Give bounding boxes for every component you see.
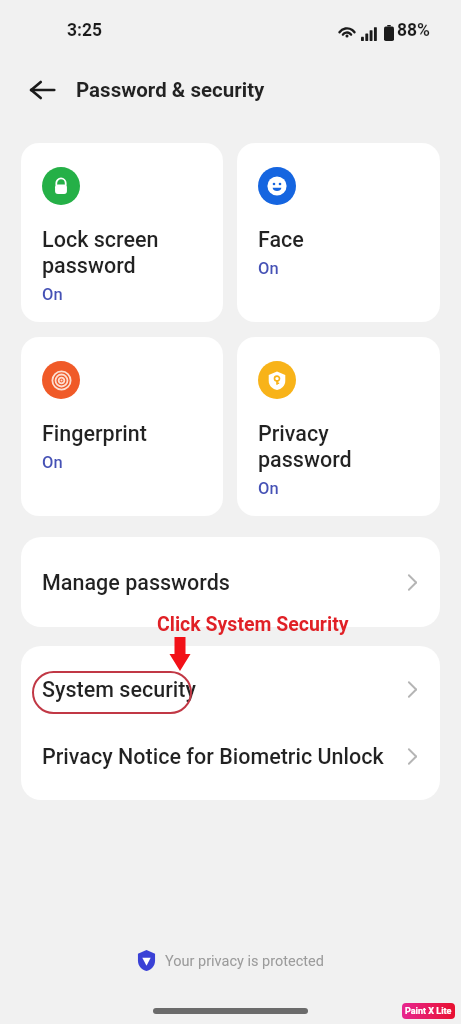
button[interactable]: Lock screen password <box>21 143 223 322</box>
button[interactable]: Face <box>237 143 440 322</box>
button[interactable]: System security <box>21 656 440 723</box>
staticText: Manage passwords <box>42 570 407 595</box>
staticText: Privacy Notice for Biometric Unlock <box>42 744 407 769</box>
button[interactable]: Fingerprint <box>21 337 223 516</box>
staticText: 3:25 <box>67 20 103 41</box>
staticText: 88% <box>397 20 431 41</box>
staticText: Privacy password <box>258 421 352 472</box>
button[interactable]: Privacy password <box>237 337 440 516</box>
staticText: On <box>258 479 279 498</box>
staticText: System security <box>42 677 407 702</box>
staticText: On <box>258 259 279 278</box>
staticText: On <box>42 453 63 472</box>
staticText: Your privacy is protected <box>165 953 324 970</box>
staticText: Fingerprint <box>42 421 147 446</box>
staticText: Paint X Lite <box>405 1006 452 1017</box>
staticText: Password & security <box>76 78 265 102</box>
staticText: Face <box>258 227 304 252</box>
button[interactable]: Back <box>26 74 58 106</box>
staticText: Lock screen password <box>42 227 159 278</box>
button[interactable]: Manage passwords <box>21 537 440 627</box>
button[interactable]: Privacy Notice for Biometric Unlock <box>21 723 440 790</box>
staticText: On <box>42 285 63 304</box>
staticText: Click System Security <box>157 613 349 636</box>
